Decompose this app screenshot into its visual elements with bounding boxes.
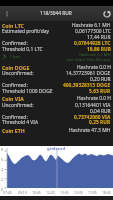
- staticText: Coin ETH: [2, 127, 25, 134]
- staticText: 0,07044928 LTC: [74, 40, 111, 47]
- staticText: Coin LTC: [2, 22, 24, 29]
- staticText: 118/3044 RUR: [40, 10, 72, 17]
- staticText: Threshold 0,1 LTC: [2, 46, 43, 53]
- staticText: 0,20 RUR: [90, 76, 111, 83]
- staticText: 8: [1, 147, 3, 152]
- staticText: 0,25 RUR: [89, 119, 111, 126]
- staticText: Confirmed:: [2, 40, 28, 47]
- staticText: 400,39328313 DOGE: [63, 82, 111, 89]
- staticText: Confirmed:: [2, 114, 28, 121]
- button[interactable]: Chart: [1, 53, 21, 60]
- staticText: 12:20: [46, 190, 55, 195]
- staticText: Unconfirmed:: [2, 102, 34, 109]
- staticText: 2: [1, 177, 3, 182]
- staticText: Hashrate 0.0 H: [77, 95, 111, 102]
- staticText: 0,06177300 LTC: [75, 28, 111, 35]
- staticText: Hashrate 47.3 MH: [69, 127, 111, 134]
- staticText: 6: [1, 157, 3, 162]
- staticText: Coin DOGE: [2, 64, 30, 71]
- staticText: Hashrate 0.0 H: [77, 64, 111, 71]
- staticText: 5,63 RUR: [89, 88, 111, 95]
- staticText: Estimated profit/day: [2, 28, 49, 35]
- staticText: Hashrate 6.1 MH: [72, 22, 111, 29]
- staticText: last share 10m 42s ago: [67, 57, 111, 62]
- staticText: Coin VIA: [2, 95, 24, 102]
- staticText: 15:30: [74, 190, 83, 195]
- staticText: Threshold 1000 DOGE: [2, 88, 53, 95]
- staticText: 14,37723961 DOGE: [66, 70, 111, 77]
- staticText: 4: [1, 167, 3, 172]
- staticText: 17:05: [88, 190, 97, 195]
- staticText: 10:45: [32, 190, 41, 195]
- staticText: 07:45: [3, 190, 12, 195]
- staticText: 17,44 RUR: [87, 34, 111, 41]
- staticText: Chart: [10, 54, 21, 60]
- staticText: gridseed: [47, 146, 66, 152]
- staticText: 0,73742060 VIA: [74, 114, 111, 121]
- staticText: 0,13164401 VIA: [75, 102, 111, 109]
- staticText: 09:10: [18, 190, 27, 195]
- button[interactable]: Refresh: [100, 6, 113, 21]
- staticText: 0,04 RUR: [90, 108, 111, 115]
- button[interactable]: More options: [0, 6, 13, 21]
- staticText: 13:55: [60, 190, 69, 195]
- staticText: Threshold 4 VIA: [2, 119, 39, 126]
- staticText: Unconfirmed:: [2, 70, 34, 77]
- staticText: 19,86 RUR: [87, 46, 111, 53]
- staticText: 0: [1, 187, 3, 192]
- staticText: 18:40: [102, 190, 111, 195]
- staticText: Hashrate 6.1 MH: [79, 52, 111, 57]
- staticText: Confirmed:: [2, 82, 28, 89]
